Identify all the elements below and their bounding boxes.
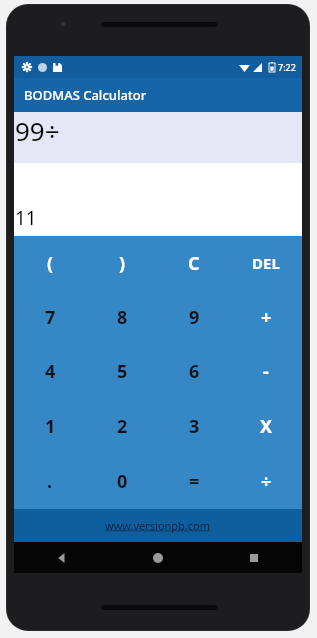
button[interactable]: 8 (86, 290, 158, 344)
staticText: ÷ (261, 469, 272, 494)
button[interactable]: 9 (158, 290, 230, 344)
button[interactable]: ( (14, 236, 86, 290)
button[interactable]: DEL (230, 236, 302, 290)
button[interactable]: C (158, 236, 230, 290)
button[interactable]: 6 (158, 344, 230, 399)
button[interactable]: 2 (86, 399, 158, 454)
staticText: 99÷ (15, 113, 60, 148)
staticText: www.versionpb.com (105, 518, 211, 533)
staticText: 7 (45, 305, 56, 330)
button[interactable]: - (230, 344, 302, 399)
button[interactable]: X (230, 399, 302, 454)
staticText: . (47, 469, 53, 494)
button[interactable]: www.versionpb.com (14, 509, 302, 542)
staticText: 2 (117, 414, 128, 439)
button[interactable]: 4 (14, 344, 86, 399)
staticText: 0 (117, 469, 128, 494)
button[interactable]: + (230, 290, 302, 344)
staticText: 1 (45, 414, 56, 439)
button[interactable]: Recent apps (206, 542, 302, 573)
staticText: 6 (189, 359, 200, 384)
button[interactable]: 99÷ (14, 112, 302, 163)
staticText: 11 (15, 205, 37, 231)
staticText: + (261, 305, 272, 330)
staticText: = (189, 469, 200, 494)
staticText: 4 (45, 359, 56, 384)
button[interactable]: Home (110, 542, 206, 573)
staticText: 9 (189, 305, 200, 330)
staticText: BODMAS Calculator (24, 86, 147, 104)
button[interactable]: 5 (86, 344, 158, 399)
staticText: DEL (252, 253, 280, 273)
button[interactable]: Back (14, 542, 110, 573)
button[interactable]: . (14, 454, 86, 509)
staticText: 7:22 (278, 61, 296, 73)
staticText: X (260, 414, 273, 439)
staticText: 3 (189, 414, 200, 439)
button[interactable]: 11 (14, 163, 302, 236)
staticText: 5 (117, 359, 128, 384)
staticText: C (188, 251, 200, 276)
button[interactable]: 3 (158, 399, 230, 454)
staticText: - (263, 359, 269, 384)
button[interactable]: ) (86, 236, 158, 290)
button[interactable]: 7 (14, 290, 86, 344)
button[interactable]: 0 (86, 454, 158, 509)
staticText: ( (47, 251, 54, 276)
button[interactable]: ÷ (230, 454, 302, 509)
button[interactable]: = (158, 454, 230, 509)
button[interactable]: 1 (14, 399, 86, 454)
staticText: 8 (117, 305, 128, 330)
staticText: ) (119, 251, 126, 276)
